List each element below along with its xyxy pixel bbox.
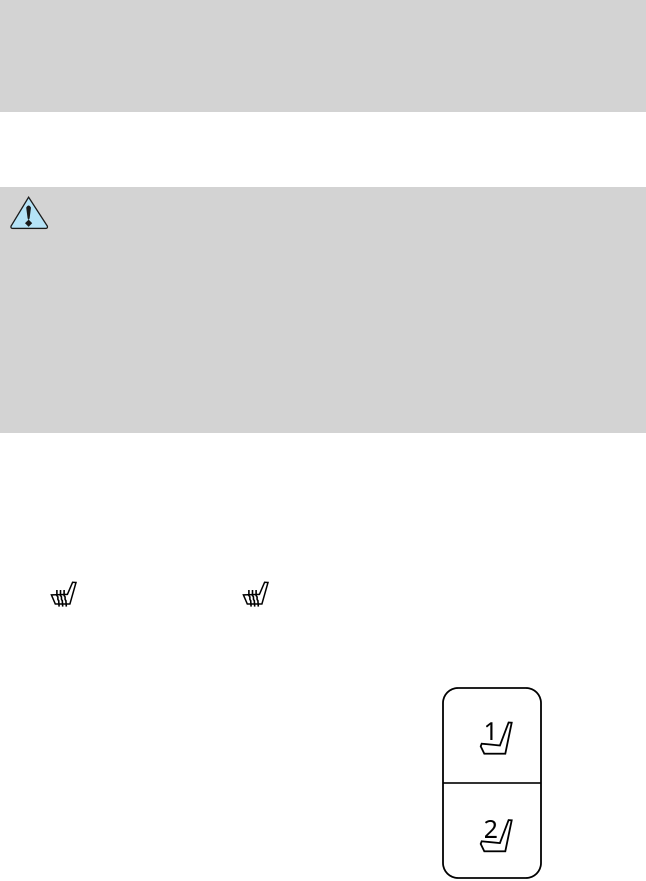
button[interactable]: Recall seat memory position 1 (443, 686, 541, 782)
staticText: 1 (483, 714, 497, 747)
button[interactable]: Recall seat memory position 2 (443, 784, 541, 880)
staticText: 2 (483, 811, 497, 845)
